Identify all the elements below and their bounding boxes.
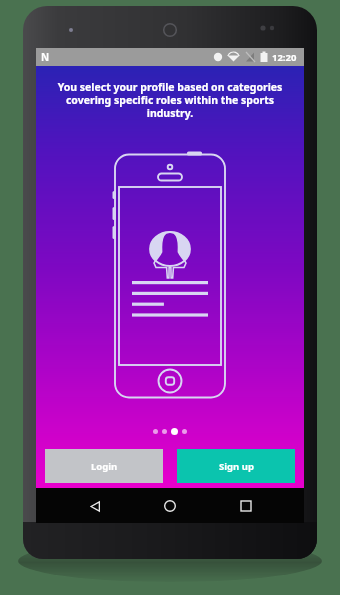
- staticText: Login: [91, 460, 118, 473]
- staticText: Sign up: [219, 460, 254, 473]
- staticText: You select your profile based on categor…: [54, 80, 286, 120]
- button[interactable]: Home: [153, 489, 187, 523]
- staticText: N: [41, 50, 50, 64]
- staticText: 12:20: [272, 51, 297, 64]
- button[interactable]: Sign up: [177, 449, 295, 483]
- button[interactable]: Recent apps: [229, 489, 263, 523]
- button[interactable]: Back: [78, 489, 112, 523]
- button[interactable]: Login: [45, 449, 163, 483]
